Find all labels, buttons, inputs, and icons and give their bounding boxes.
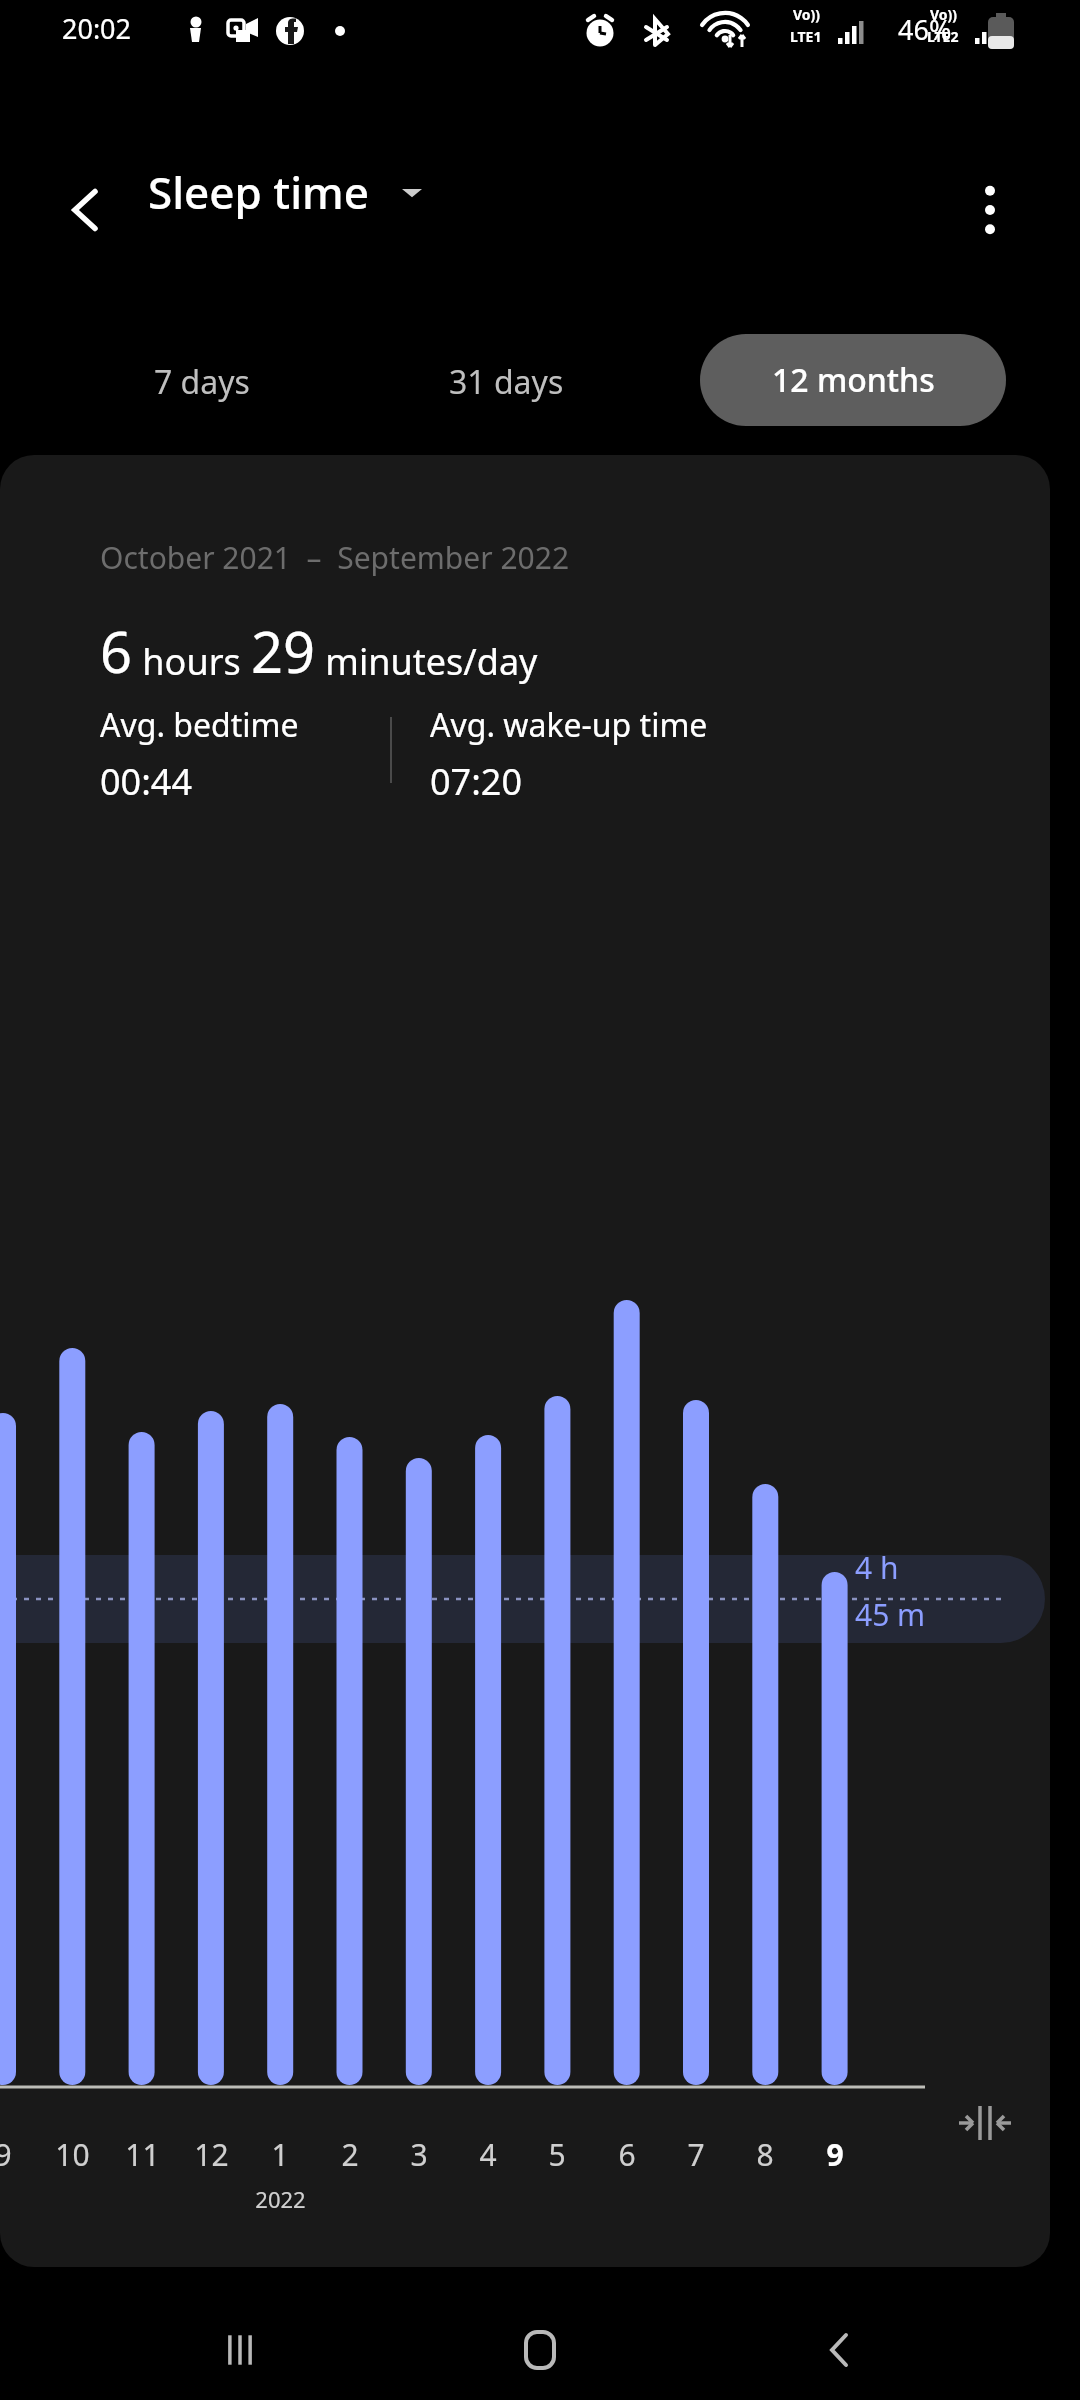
button[interactable]: 7 days — [108, 338, 296, 426]
staticText: 2022 — [255, 2184, 306, 2214]
staticText: October 2021 – September 2022 — [100, 537, 570, 578]
staticText: 10 — [55, 2134, 90, 2175]
staticText: 4 — [479, 2134, 497, 2175]
staticText: Vo)) — [930, 5, 958, 24]
staticText: 4 h — [855, 1547, 899, 1588]
staticText: hours — [133, 637, 251, 686]
staticText: 20:02 — [62, 10, 132, 47]
button[interactable]: Sleep time — [148, 162, 425, 222]
button[interactable]: 12 months — [700, 334, 1006, 426]
staticText: 31 days — [449, 360, 564, 404]
staticText: 29 — [251, 613, 316, 689]
button[interactable]: Recent apps — [180, 2300, 300, 2400]
staticText: 46% — [898, 11, 952, 48]
staticText: 45 m — [855, 1594, 926, 1635]
staticText: 7 — [687, 2134, 705, 2175]
button[interactable]: Fit chart to screen — [930, 2068, 1040, 2178]
staticText: Avg. bedtime — [100, 703, 299, 747]
staticText: 12 months — [772, 358, 935, 402]
staticText: Avg. wake-up time — [430, 703, 708, 747]
button[interactable]: Back — [780, 2300, 900, 2400]
staticText: 2 — [341, 2134, 359, 2175]
staticText: 1 — [271, 2134, 289, 2175]
button[interactable]: October 2021 – September 2022 — [0, 455, 1050, 2267]
staticText: 12 — [194, 2134, 229, 2175]
staticText: 6 — [618, 2134, 636, 2175]
staticText: Sleep time — [148, 162, 369, 222]
button[interactable]: More options — [948, 168, 1032, 252]
staticText: LTE2 — [927, 27, 959, 46]
staticText: LTE1 — [790, 27, 822, 46]
button[interactable]: Home — [480, 2300, 600, 2400]
button[interactable]: Back — [48, 168, 132, 252]
staticText: 5 — [548, 2134, 566, 2175]
staticText: 9 — [826, 2134, 844, 2175]
staticText: 6 — [100, 613, 133, 689]
staticText: 7 days — [154, 360, 250, 404]
staticText: 00:44 — [100, 757, 193, 806]
staticText: 11 — [125, 2134, 160, 2175]
staticText: 07:20 — [430, 757, 523, 806]
button[interactable]: 31 days — [412, 338, 600, 426]
staticText: 3 — [410, 2134, 428, 2175]
staticText: minutes/day — [316, 637, 538, 686]
staticText: 9 — [0, 2134, 12, 2175]
staticText: 8 — [756, 2134, 774, 2175]
staticText: Vo)) — [793, 5, 821, 24]
